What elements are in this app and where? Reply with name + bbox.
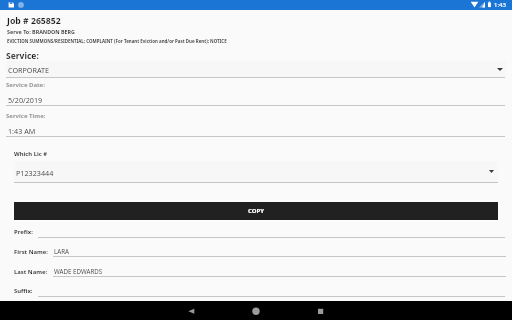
staticText: 5/20/2019 [8,95,43,105]
button[interactable]: LARA [53,243,506,256]
staticText: Last Name: [14,268,48,276]
button[interactable]: P12323444 [14,161,498,182]
staticText: Suffix: [14,287,33,295]
staticText: Prefix: [14,228,33,236]
staticText: First Name: [14,248,48,256]
staticText: COPY [248,207,264,215]
button[interactable]: Back [186,306,197,316]
button[interactable]: 1:43 AM [6,121,506,136]
button[interactable]: COPY [14,202,498,220]
button[interactable]: Recent apps [315,306,326,316]
staticText: EVICTION SUMMONS/RESIDENTIAL; COMPLAINT … [7,38,227,44]
button[interactable]: CORPORATE [6,61,506,77]
staticText: CORPORATE [8,65,49,75]
staticText: WADE EDWARDS [54,267,103,275]
button[interactable]: WADE EDWARDS [53,263,506,276]
button[interactable]: Home [250,306,262,316]
staticText: Serve To: BRANDON BERG [7,28,75,35]
staticText: P12323444 [16,168,54,178]
staticText: LARA [54,247,69,255]
staticText: Job # 265852 [7,15,61,27]
staticText: Service Time: [6,112,46,120]
staticText: Service Date: [6,81,45,89]
staticText: Service: [6,50,39,62]
staticText: Which Lic # [14,150,48,158]
staticText: 1:43 AM [8,126,36,136]
button[interactable]: 5/20/2019 [6,90,506,105]
staticText: 1:43 [494,1,506,9]
